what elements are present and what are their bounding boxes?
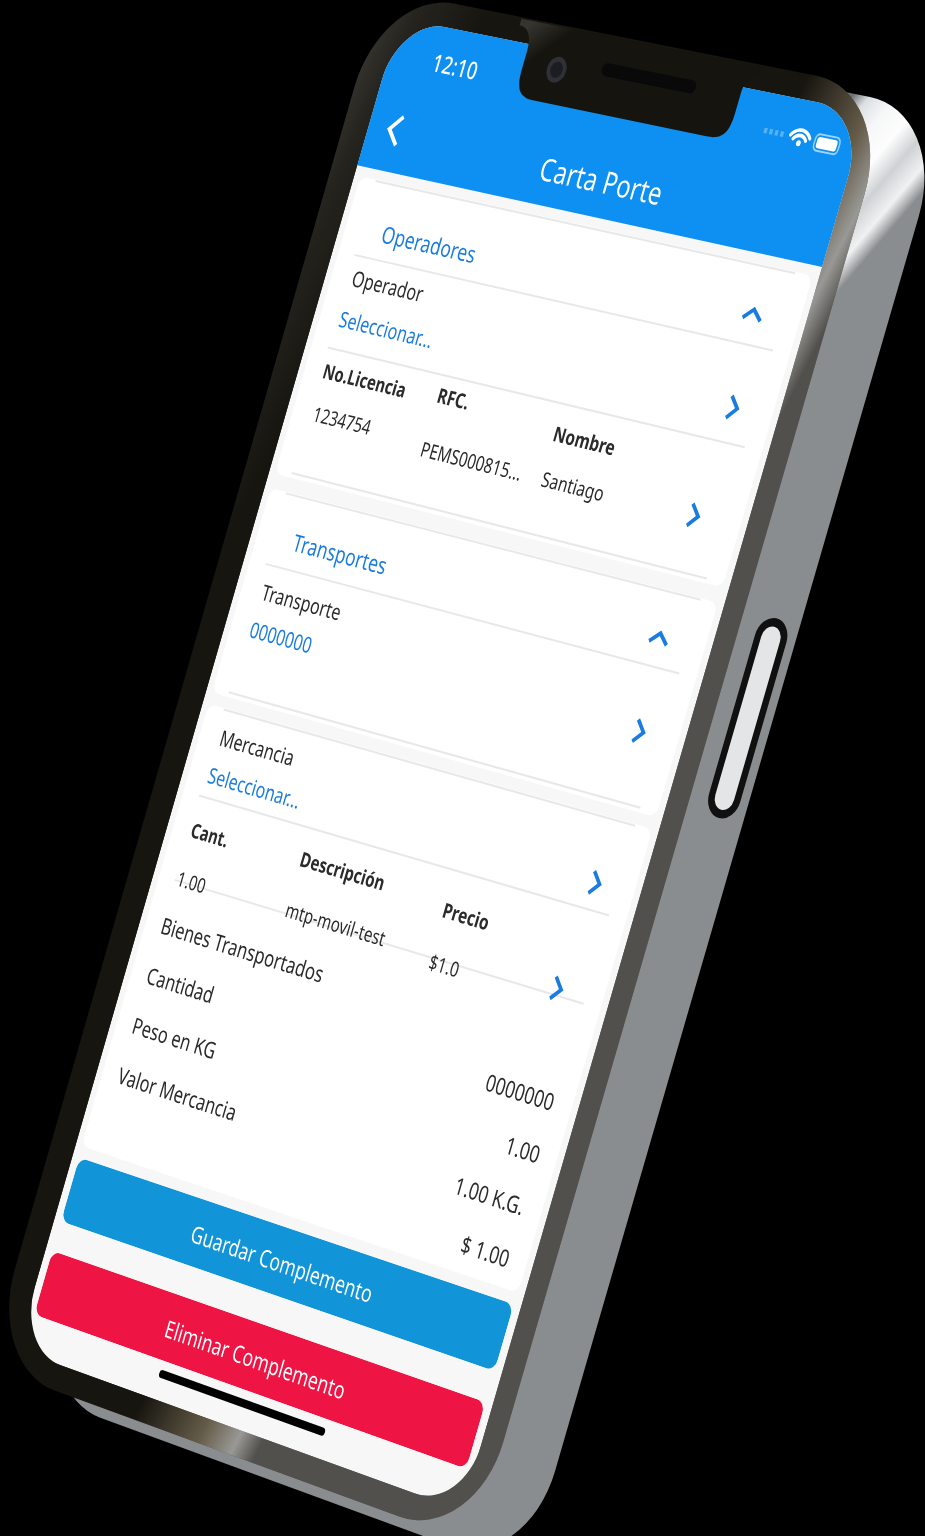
button[interactable]: Open details bbox=[371, 389, 397, 415]
staticText: Guardar Complemento bbox=[146, 757, 304, 777]
button[interactable]: Cantidad bbox=[49, 609, 401, 641]
staticText: Eliminar Complemento bbox=[147, 817, 304, 837]
button[interactable]: $ 1.00 bbox=[49, 705, 401, 737]
button[interactable]: Open details bbox=[365, 548, 391, 574]
staticText: Precio bbox=[272, 527, 311, 544]
button[interactable]: Open details bbox=[371, 482, 397, 508]
button[interactable]: Collapse section bbox=[365, 333, 391, 359]
staticText: Santiago bbox=[252, 263, 304, 280]
button[interactable]: Peso en KG bbox=[49, 641, 401, 673]
staticText: mtp-movil-test bbox=[147, 554, 233, 571]
button[interactable]: Collapse section bbox=[365, 135, 391, 161]
button[interactable]: Eliminar Complemento bbox=[36, 806, 414, 847]
button[interactable]: Valor Mercancia bbox=[49, 673, 401, 705]
button[interactable]: Bienes Transportados bbox=[49, 577, 401, 609]
staticText: $1.0 bbox=[273, 559, 298, 576]
button[interactable]: Open details bbox=[365, 258, 391, 284]
button[interactable]: Guardar Complemento bbox=[36, 746, 414, 787]
